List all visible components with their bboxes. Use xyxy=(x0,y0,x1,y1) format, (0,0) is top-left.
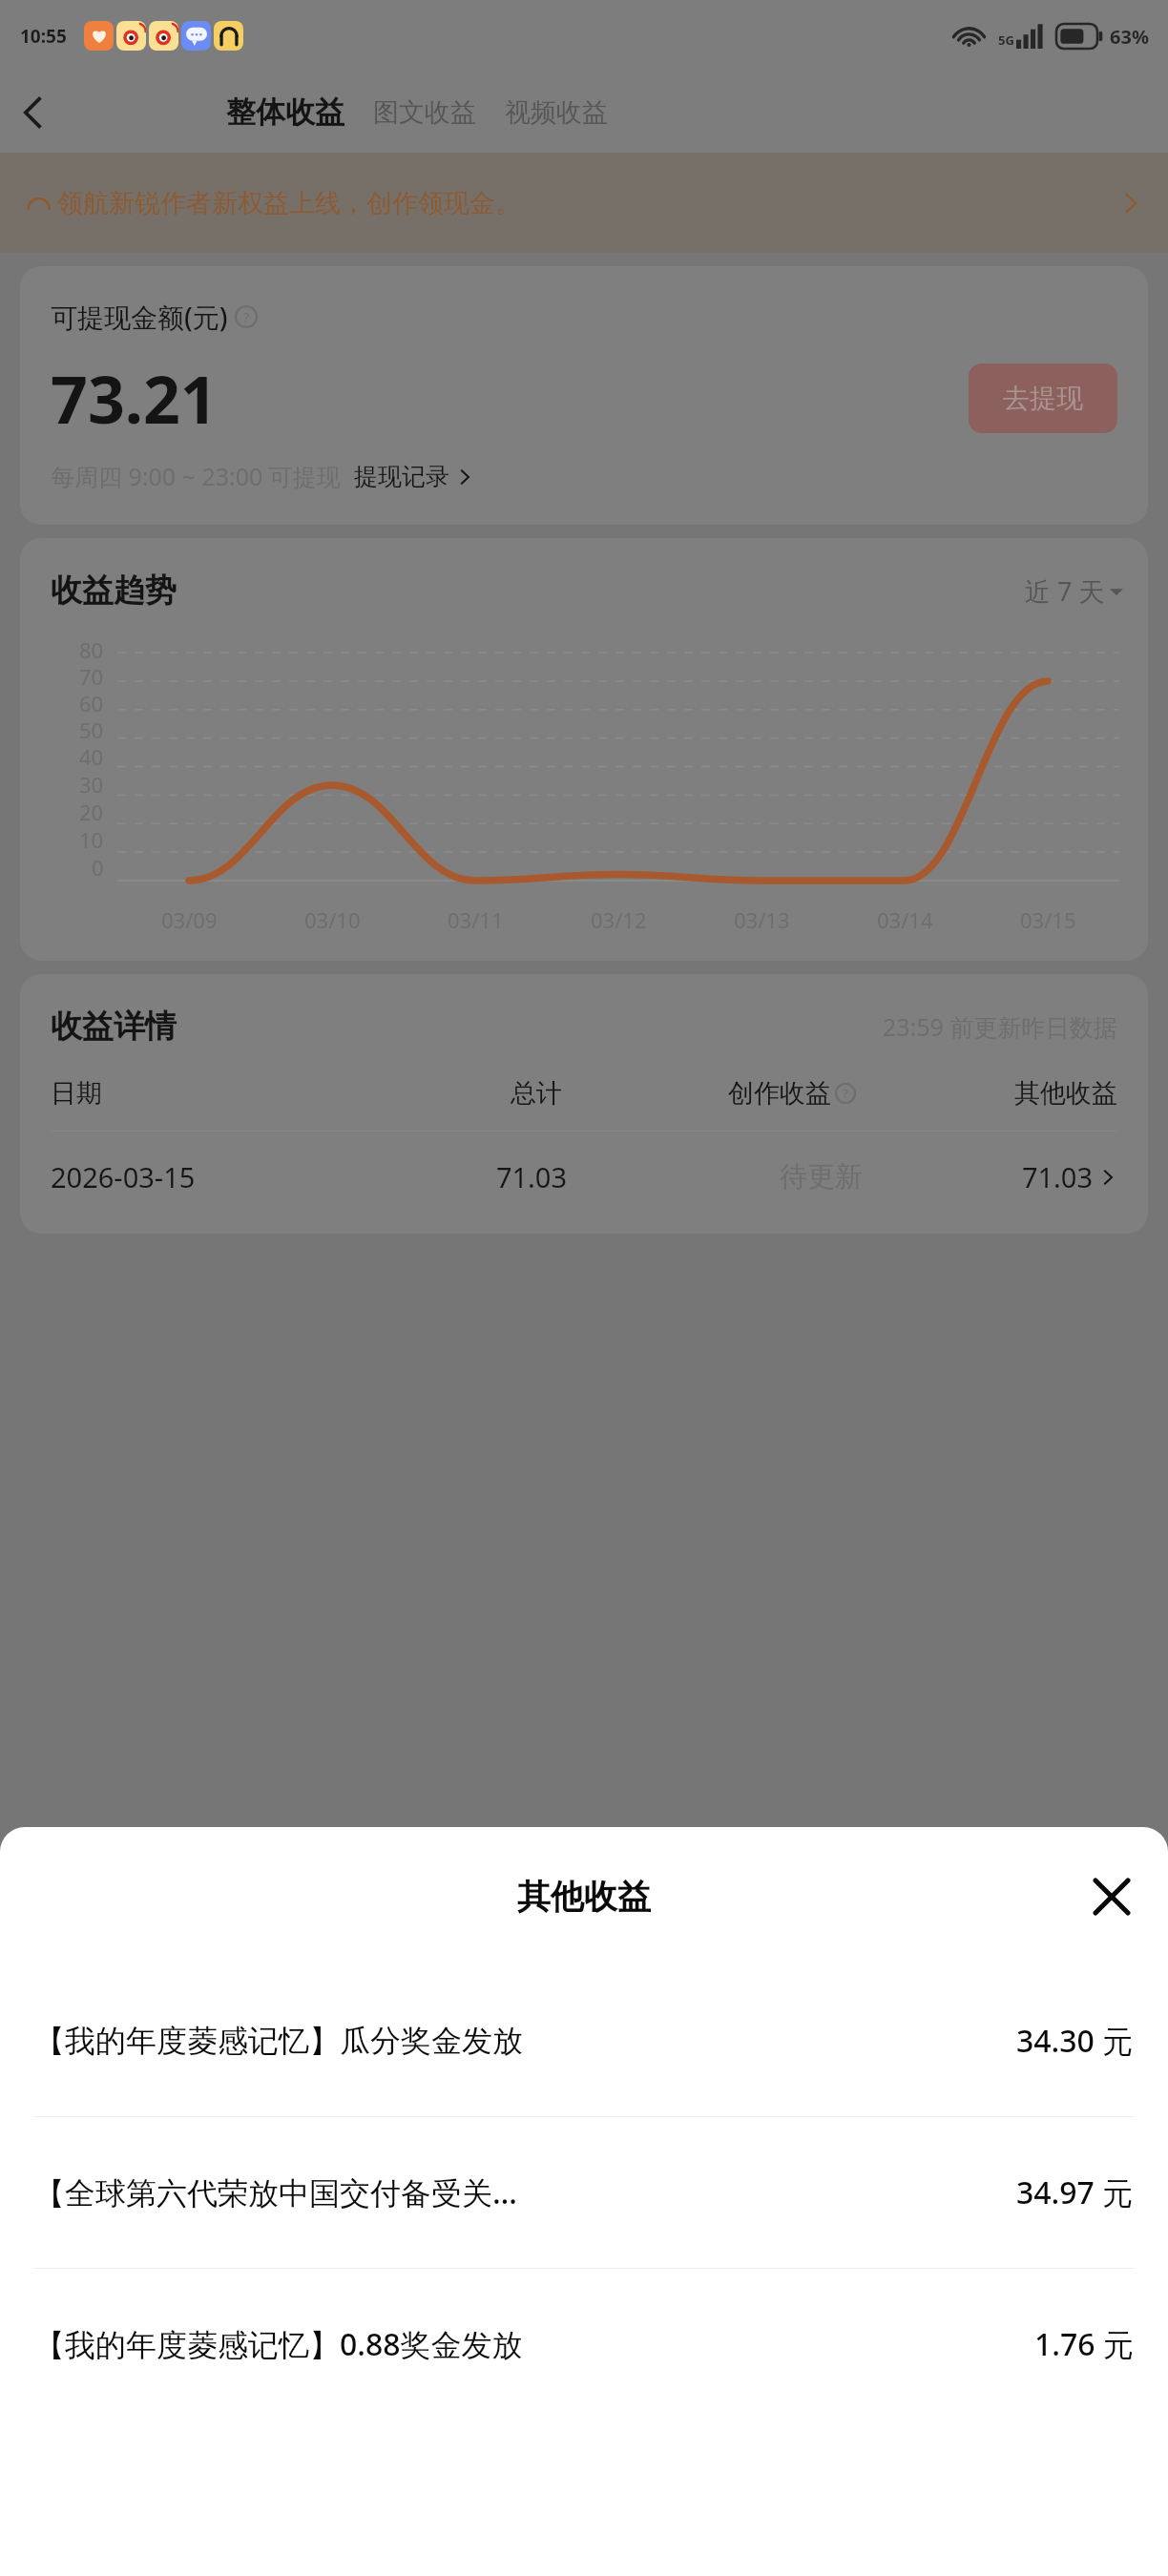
staticText: 03/13 xyxy=(734,905,790,934)
staticText: 【全球第六代荣放中国交付备受关… xyxy=(34,2171,1001,2213)
staticText: 71.03 xyxy=(863,1158,1093,1195)
staticText: 73.21 xyxy=(51,354,218,443)
staticText: 【我的年度菱感记忆】0.88奖金发放 xyxy=(34,2323,1019,2365)
button[interactable]: 【全球第六代荣放中国交付备受关… xyxy=(0,2117,1168,2269)
button[interactable]: Back xyxy=(0,79,67,146)
staticText: 50 xyxy=(79,716,104,742)
staticText: 03/11 xyxy=(448,905,504,934)
staticText: 领航新锐作者新权益上线，创作领现金。 xyxy=(57,187,521,219)
staticText: 近 7 天 xyxy=(1025,573,1105,609)
staticText: 去提现 xyxy=(1003,382,1083,415)
button[interactable]: 2026-03-15 xyxy=(51,1132,1117,1195)
staticText: 03/09 xyxy=(161,905,218,934)
button[interactable]: 整体收益 xyxy=(222,88,348,136)
staticText: 20 xyxy=(79,798,104,825)
button[interactable]: 视频收益 xyxy=(501,91,612,135)
staticText: 60 xyxy=(79,689,104,716)
staticText: 日期 xyxy=(51,1077,344,1110)
staticText: 34.30 元 xyxy=(1016,2020,1134,2062)
staticText: 70 xyxy=(79,662,104,689)
staticText: 收益详情 xyxy=(51,1007,177,1047)
staticText: 收益趋势 xyxy=(51,571,177,611)
staticText: 总计 xyxy=(344,1077,562,1110)
button[interactable]: 【我的年度菱感记忆】瓜分奖金发放 xyxy=(0,1965,1168,2117)
staticText: 2026-03-15 xyxy=(51,1158,347,1195)
button[interactable]: 近 7 天 xyxy=(1025,573,1123,609)
staticText: 1.76 元 xyxy=(1034,2323,1134,2365)
staticText: 其他收益 xyxy=(517,1876,651,1918)
staticText: 30 xyxy=(79,770,104,798)
staticText: 03/15 xyxy=(1020,905,1076,934)
staticText: ? xyxy=(843,1085,848,1102)
staticText: 整体收益 xyxy=(226,93,344,131)
staticText: 5G xyxy=(998,31,1014,49)
staticText: 71.03 xyxy=(347,1158,567,1195)
button[interactable]: 关闭 xyxy=(1084,1869,1139,1924)
button[interactable]: 帮助 xyxy=(235,305,258,328)
staticText: 10 xyxy=(79,825,104,853)
button[interactable]: 提现记录 xyxy=(354,462,474,491)
staticText: 视频收益 xyxy=(505,96,608,129)
button[interactable]: 图文收益 xyxy=(369,91,480,135)
staticText: 10:55 xyxy=(20,24,67,49)
staticText: 34.97 元 xyxy=(1016,2171,1134,2213)
staticText: 03/10 xyxy=(304,905,361,934)
staticText: 63% xyxy=(1110,24,1149,50)
staticText: 03/14 xyxy=(877,905,933,934)
staticText: 每周四 9:00 ~ 23:00 可提现 xyxy=(51,460,341,492)
staticText: 80 xyxy=(79,635,104,662)
staticText: 【我的年度菱感记忆】瓜分奖金发放 xyxy=(34,2022,1001,2060)
staticText: 03/12 xyxy=(591,905,647,934)
button[interactable]: 领航新锐作者新权益上线，创作领现金。 xyxy=(0,153,1168,253)
staticText: 图文收益 xyxy=(373,96,476,129)
staticText: ? xyxy=(243,308,250,326)
button[interactable]: 去提现 xyxy=(969,364,1117,433)
staticText: 23:59 前更新昨日数据 xyxy=(883,1010,1117,1043)
staticText: 可提现金额(元) xyxy=(51,299,228,335)
staticText: 待更新 xyxy=(567,1159,863,1195)
staticText: 40 xyxy=(79,742,104,770)
staticText: 创作收益 xyxy=(728,1077,831,1110)
staticText: 0 xyxy=(92,853,104,881)
button[interactable]: 【我的年度菱感记忆】0.88奖金发放 xyxy=(0,2269,1168,2420)
staticText: 其他收益 xyxy=(856,1077,1117,1110)
staticText: 提现记录 xyxy=(354,462,449,491)
